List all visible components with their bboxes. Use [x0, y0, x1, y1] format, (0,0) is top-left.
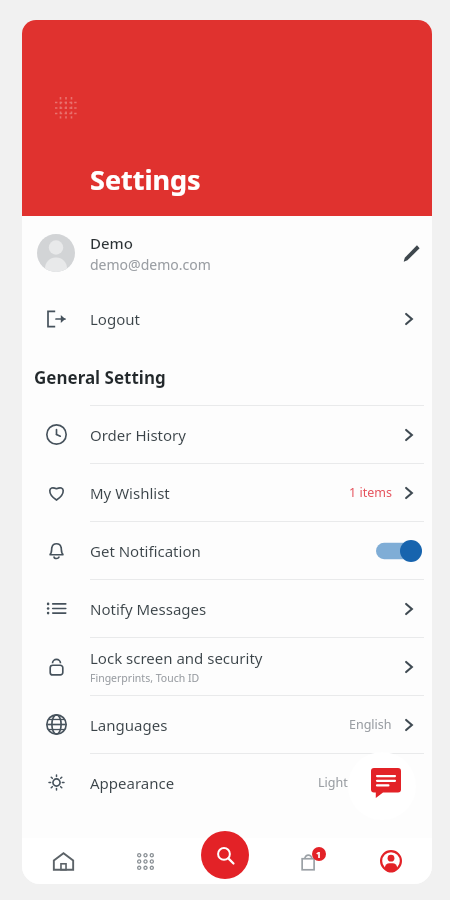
- staticText: demo@demo.com: [90, 255, 211, 274]
- staticText: General Setting: [34, 366, 166, 389]
- staticText: Demo: [90, 233, 133, 253]
- button[interactable]: Appearance: [22, 754, 432, 811]
- staticText: English: [349, 716, 392, 733]
- button[interactable]: Get Notification: [22, 522, 432, 579]
- staticText: Logout: [90, 309, 400, 329]
- button[interactable]: Chat support: [348, 752, 416, 820]
- button[interactable]: Demo: [22, 216, 432, 290]
- button[interactable]: Languages: [22, 696, 432, 753]
- staticText: Settings: [90, 161, 201, 198]
- button[interactable]: Categories: [104, 838, 186, 884]
- staticText: Get Notification: [90, 541, 201, 561]
- button[interactable]: Notify Messages: [22, 580, 432, 637]
- button[interactable]: Lock screen and security: [22, 638, 432, 695]
- staticText: Appearance: [90, 773, 175, 793]
- button[interactable]: Edit profile: [388, 231, 432, 275]
- staticText: Languages: [90, 715, 168, 735]
- button[interactable]: Cart: [268, 838, 350, 884]
- button[interactable]: Menu: [46, 88, 86, 128]
- staticText: My Wishlist: [90, 483, 170, 503]
- staticText: Order History: [90, 425, 186, 445]
- staticText: Notify Messages: [90, 599, 207, 619]
- button[interactable]: Order History: [22, 406, 432, 463]
- staticText: Light Theme: [318, 774, 392, 791]
- button[interactable]: Home: [22, 838, 104, 884]
- staticText: 1: [316, 848, 322, 860]
- button[interactable]: Search: [201, 831, 249, 879]
- button[interactable]: [376, 540, 422, 562]
- staticText: Fingerprints, Touch ID: [90, 671, 200, 685]
- button[interactable]: Profile: [350, 838, 432, 884]
- button[interactable]: Logout: [22, 290, 432, 348]
- staticText: Lock screen and security: [90, 648, 263, 668]
- staticText: 1 items: [349, 484, 392, 501]
- button[interactable]: My Wishlist: [22, 464, 432, 521]
